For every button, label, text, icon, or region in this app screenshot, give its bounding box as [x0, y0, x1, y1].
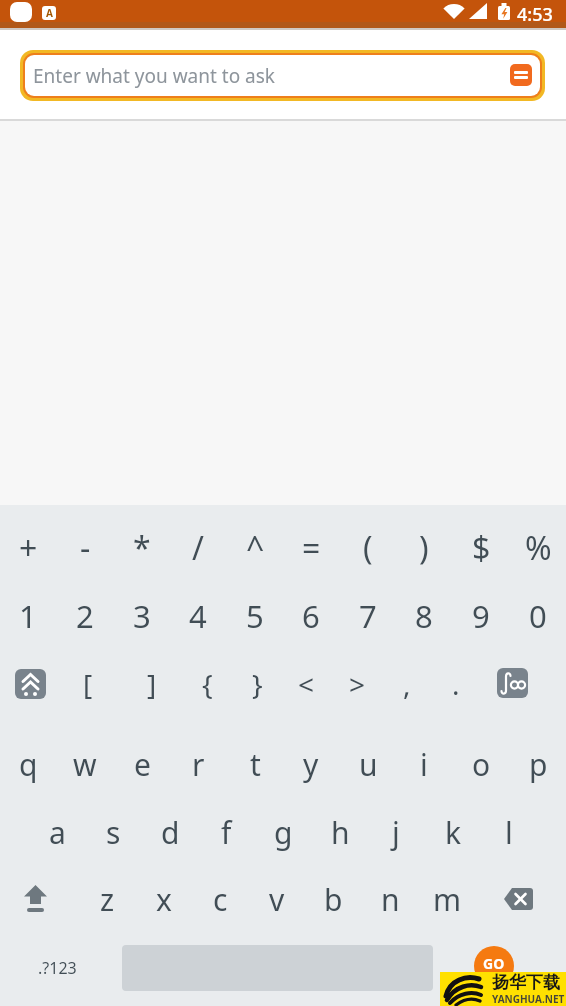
button[interactable]: x: [136, 868, 192, 930]
staticText: }: [252, 665, 263, 703]
button[interactable]: [500, 880, 540, 920]
button[interactable]: r: [170, 733, 226, 795]
button[interactable]: b: [305, 868, 361, 930]
button[interactable]: p: [510, 733, 566, 795]
staticText: m: [433, 879, 462, 920]
staticText: 扬华下载: [492, 972, 560, 993]
button[interactable]: l: [481, 801, 537, 863]
staticText: 8: [415, 595, 433, 637]
button[interactable]: -: [57, 517, 113, 579]
staticText: .?123: [38, 957, 77, 979]
button[interactable]: [: [60, 653, 116, 715]
staticText: YANGHUA.NET: [492, 992, 565, 1006]
button[interactable]: k: [425, 801, 481, 863]
button[interactable]: 4: [170, 585, 226, 647]
staticText: s: [106, 812, 121, 853]
button[interactable]: [497, 668, 528, 698]
staticText: i: [420, 744, 428, 785]
button[interactable]: s: [85, 801, 141, 863]
button[interactable]: 2: [57, 585, 113, 647]
button[interactable]: 3: [114, 585, 170, 647]
button[interactable]: v: [249, 868, 305, 930]
button[interactable]: 7: [340, 585, 396, 647]
staticText: v: [269, 879, 285, 920]
button[interactable]: ^: [227, 517, 283, 579]
staticText: [: [83, 665, 93, 703]
staticText: n: [381, 879, 400, 920]
button[interactable]: ,: [379, 653, 435, 715]
button[interactable]: (: [340, 517, 396, 579]
button[interactable]: 9: [453, 585, 509, 647]
staticText: 4:53: [517, 2, 553, 27]
button[interactable]: t: [227, 733, 283, 795]
button[interactable]: d: [142, 801, 198, 863]
staticText: b: [324, 879, 343, 920]
staticText: (: [363, 526, 373, 570]
staticText: d: [161, 812, 180, 853]
button[interactable]: z: [79, 868, 135, 930]
button[interactable]: [15, 669, 46, 699]
button[interactable]: m: [419, 868, 475, 930]
button[interactable]: {: [179, 653, 235, 715]
button[interactable]: $: [453, 517, 509, 579]
button[interactable]: GO: [474, 946, 514, 986]
staticText: j: [392, 812, 400, 853]
staticText: g: [274, 812, 293, 853]
staticText: w: [73, 744, 97, 785]
staticText: ,: [403, 665, 411, 703]
staticText: $: [472, 526, 491, 570]
staticText: ]: [147, 665, 157, 703]
button[interactable]: h: [312, 801, 368, 863]
staticText: u: [359, 744, 378, 785]
staticText: f: [221, 812, 232, 853]
button[interactable]: [18, 880, 58, 920]
button[interactable]: i: [396, 733, 452, 795]
button[interactable]: j: [368, 801, 424, 863]
button[interactable]: =: [283, 517, 339, 579]
button[interactable]: >: [329, 653, 385, 715]
staticText: o: [472, 744, 491, 785]
button[interactable]: 0: [510, 585, 566, 647]
button[interactable]: a: [29, 801, 85, 863]
button[interactable]: 1: [0, 585, 56, 647]
button[interactable]: }: [229, 653, 285, 715]
staticText: e: [134, 744, 151, 785]
staticText: l: [505, 812, 513, 853]
button[interactable]: [510, 64, 532, 86]
button[interactable]: .: [428, 653, 484, 715]
button[interactable]: %: [510, 517, 566, 579]
staticText: r: [192, 744, 205, 785]
button[interactable]: <: [278, 653, 334, 715]
staticText: p: [529, 744, 548, 785]
staticText: <: [298, 665, 315, 703]
button[interactable]: e: [114, 733, 170, 795]
button[interactable]: q: [0, 733, 56, 795]
staticText: A: [46, 6, 53, 20]
staticText: ): [419, 526, 429, 570]
staticText: t: [250, 744, 261, 785]
button[interactable]: 6: [283, 585, 339, 647]
button[interactable]: ]: [124, 653, 180, 715]
staticText: x: [156, 879, 172, 920]
button[interactable]: w: [57, 733, 113, 795]
staticText: GO: [483, 954, 505, 973]
button[interactable]: n: [362, 868, 418, 930]
button[interactable]: .?123: [20, 945, 95, 990]
button[interactable]: o: [453, 733, 509, 795]
button[interactable]: +: [0, 517, 56, 579]
staticText: 3: [133, 595, 151, 637]
button[interactable]: c: [192, 868, 248, 930]
button[interactable]: g: [255, 801, 311, 863]
button[interactable]: Enter what you want to ask: [20, 50, 545, 101]
staticText: 1: [19, 595, 37, 637]
button[interactable]: u: [340, 733, 396, 795]
staticText: +: [19, 526, 38, 570]
button[interactable]: f: [198, 801, 254, 863]
button[interactable]: y: [283, 733, 339, 795]
button[interactable]: 8: [396, 585, 452, 647]
button[interactable]: /: [170, 517, 226, 579]
button[interactable]: *: [114, 517, 170, 579]
button[interactable]: 5: [227, 585, 283, 647]
button[interactable]: ): [396, 517, 452, 579]
